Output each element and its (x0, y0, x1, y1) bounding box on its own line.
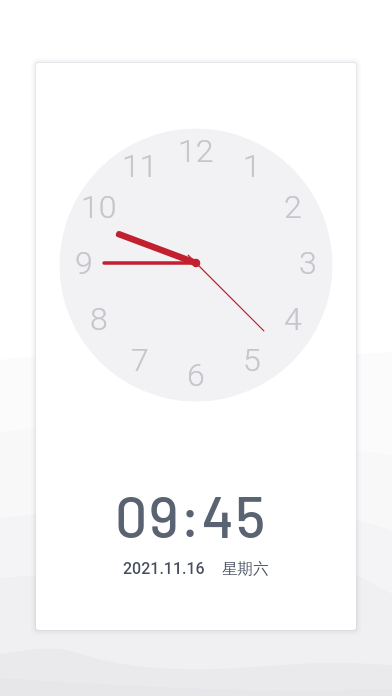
staticText: 星期六 (222, 559, 269, 579)
staticText: 9 (75, 244, 93, 282)
button[interactable]: 1 (36, 63, 356, 630)
staticText: 09:45 (115, 481, 267, 547)
staticText: 3 (299, 244, 317, 282)
staticText: 1 (243, 147, 261, 185)
staticText: 2021.11.16 (123, 559, 205, 578)
staticText: 7 (131, 341, 149, 379)
staticText: 12 (178, 132, 214, 170)
staticText: 2 (284, 188, 302, 226)
staticText: 5 (243, 341, 261, 379)
staticText: 4 (284, 300, 302, 338)
staticText: 6 (187, 356, 205, 394)
staticText: 11 (122, 147, 158, 185)
staticText: 10 (81, 188, 117, 226)
staticText: 8 (90, 300, 108, 338)
